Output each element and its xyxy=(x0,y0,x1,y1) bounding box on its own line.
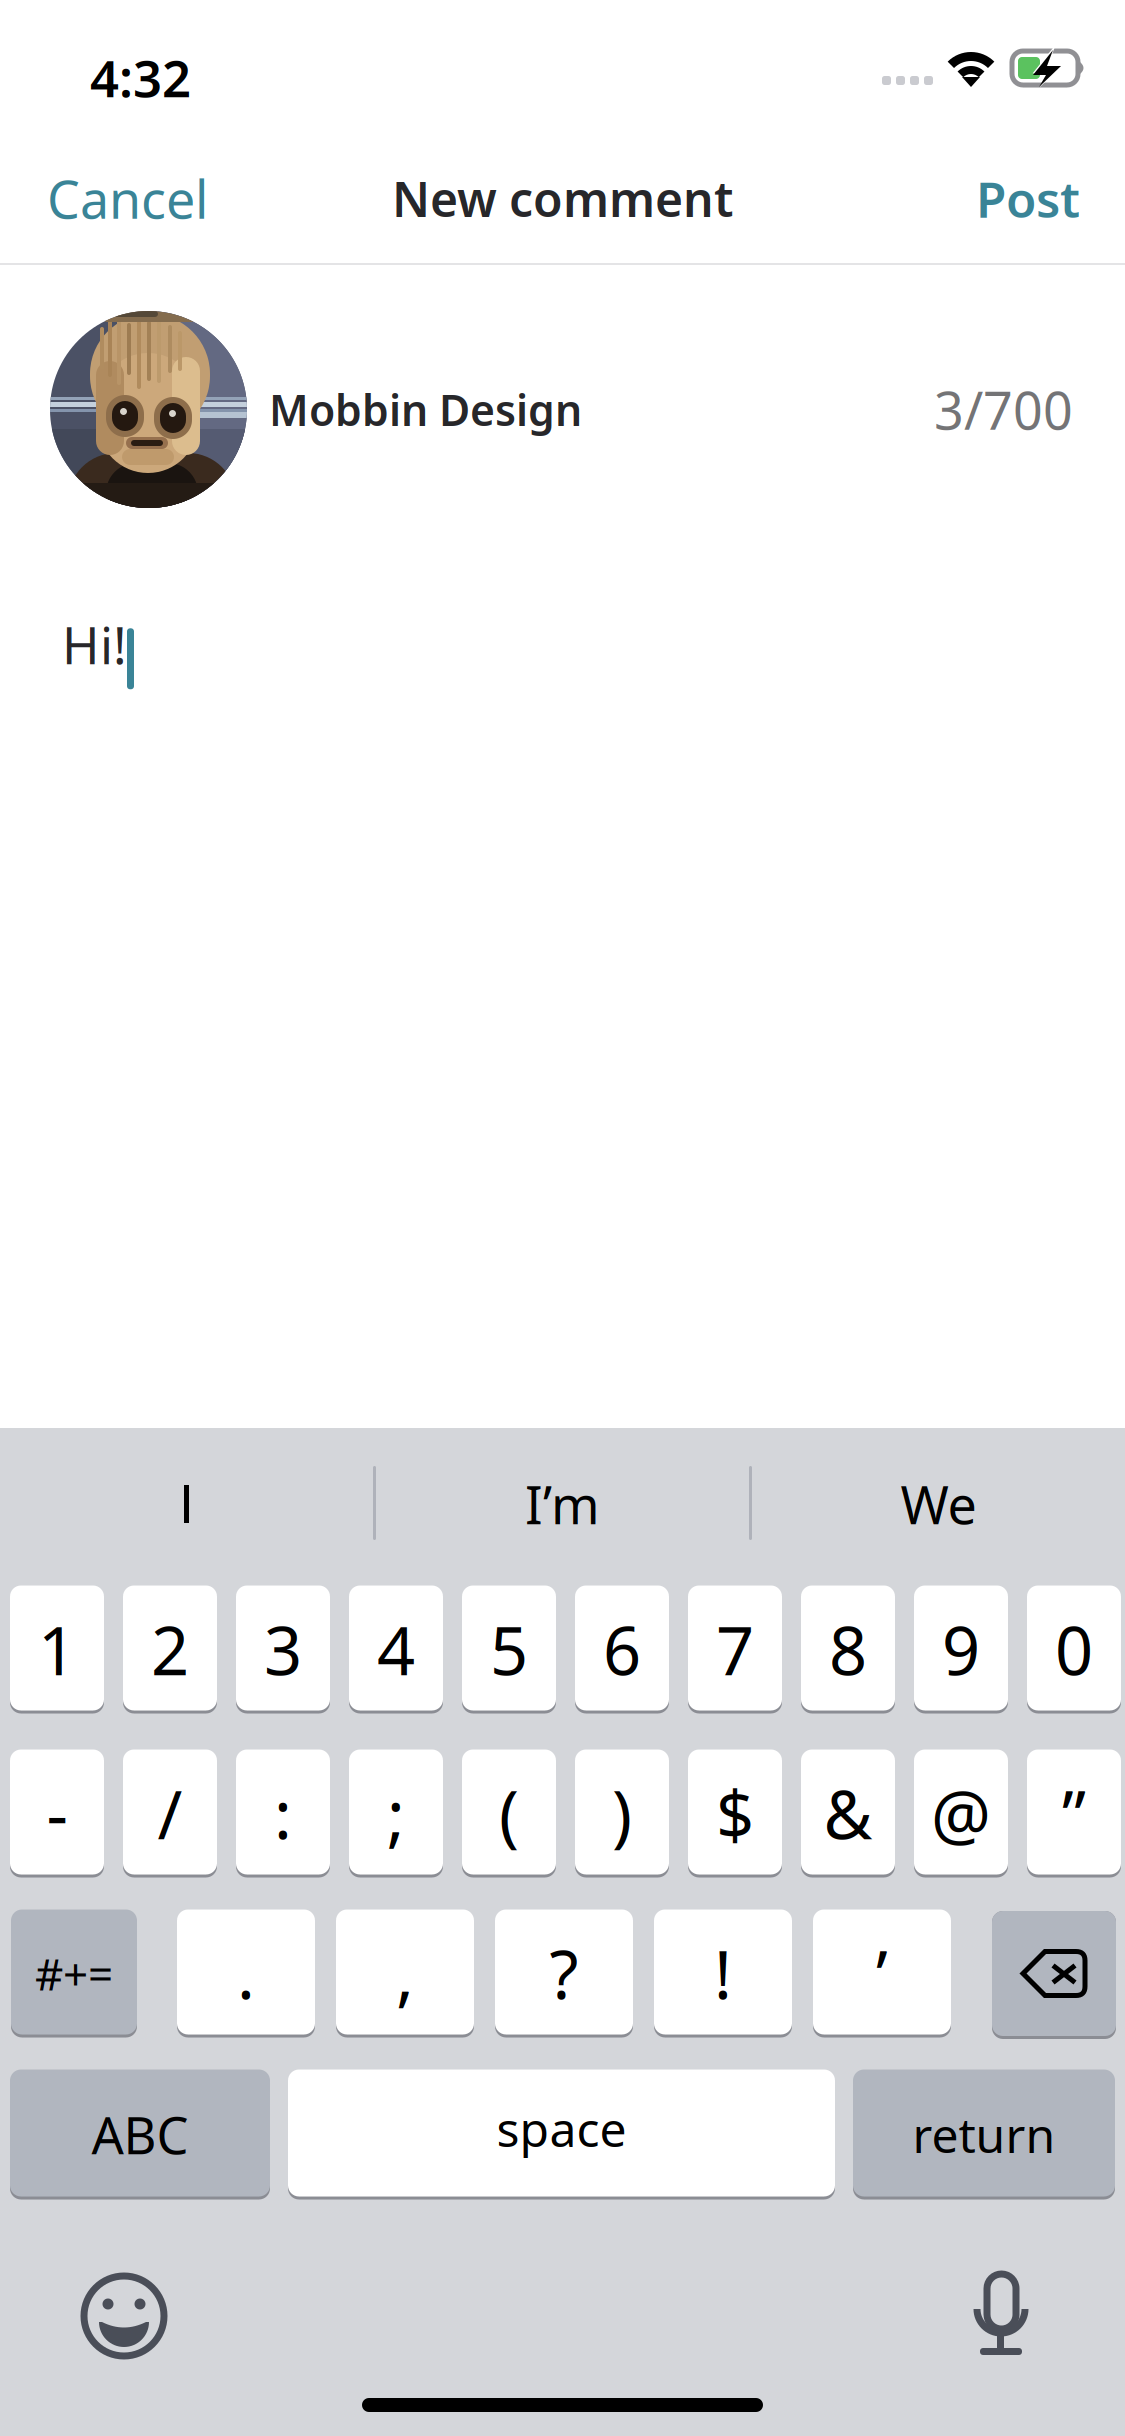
staticText: 0 xyxy=(1055,1605,1093,1694)
button[interactable]: ’ xyxy=(813,1911,951,2036)
button[interactable]: ? xyxy=(495,1911,633,2036)
button[interactable]: @ xyxy=(914,1751,1008,1876)
button[interactable]: #+= xyxy=(11,1911,137,2036)
button[interactable]: space xyxy=(288,2071,835,2198)
button[interactable]: ; xyxy=(349,1751,443,1876)
staticText: ; xyxy=(387,1769,405,1858)
staticText: / xyxy=(157,1769,182,1858)
button[interactable]: ABC xyxy=(10,2071,270,2198)
staticText: 1 xyxy=(38,1605,76,1694)
button[interactable]: ( xyxy=(462,1751,556,1876)
button[interactable]: / xyxy=(123,1751,217,1876)
button[interactable]: Cancel xyxy=(47,132,208,265)
button[interactable]: I xyxy=(0,1427,373,1587)
button[interactable]: Emoji keyboard xyxy=(82,2274,166,2358)
button[interactable]: return xyxy=(853,2071,1115,2198)
staticText: 4 xyxy=(377,1605,415,1694)
staticText: $ xyxy=(716,1769,754,1858)
staticText: ’ xyxy=(876,1929,888,2018)
staticText: We xyxy=(900,1469,976,1539)
staticText: 8 xyxy=(829,1605,867,1694)
staticText: Post xyxy=(976,166,1080,231)
button[interactable]: Post xyxy=(976,132,1080,265)
staticText: Hi! xyxy=(62,611,127,678)
staticText: ? xyxy=(549,1929,578,2018)
button[interactable]: $ xyxy=(688,1751,782,1876)
button[interactable]: I’m xyxy=(376,1427,749,1587)
staticText: 3 xyxy=(264,1605,302,1694)
staticText: 6 xyxy=(603,1605,641,1694)
staticText: New comment xyxy=(392,167,733,230)
button[interactable]: Delete xyxy=(992,1911,1116,2036)
button[interactable]: 9 xyxy=(914,1587,1008,1712)
button[interactable]: 3 xyxy=(236,1587,330,1712)
button[interactable]: 4 xyxy=(349,1587,443,1712)
button[interactable]: & xyxy=(801,1751,895,1876)
staticText: 4:32 xyxy=(90,44,191,111)
button[interactable]: ! xyxy=(654,1911,792,2036)
button[interactable]: 1 xyxy=(10,1587,104,1712)
button[interactable]: ) xyxy=(575,1751,669,1876)
staticText: #+= xyxy=(35,1944,113,2003)
staticText: , xyxy=(396,1929,414,2018)
staticText: 5 xyxy=(490,1605,528,1694)
button[interactable]: 5 xyxy=(462,1587,556,1712)
staticText: I’m xyxy=(525,1469,600,1539)
button[interactable]: 0 xyxy=(1027,1587,1121,1712)
button[interactable]: Dictation xyxy=(959,2274,1043,2358)
staticText: space xyxy=(496,2097,626,2160)
staticText: - xyxy=(46,1769,67,1858)
staticText: & xyxy=(823,1769,872,1858)
button[interactable]: 7 xyxy=(688,1587,782,1712)
button[interactable]: 8 xyxy=(801,1587,895,1712)
button[interactable]: , xyxy=(336,1911,474,2036)
staticText: 2 xyxy=(151,1605,189,1694)
button[interactable]: 6 xyxy=(575,1587,669,1712)
staticText: ) xyxy=(612,1769,632,1858)
button[interactable]: . xyxy=(177,1911,315,2036)
staticText: ! xyxy=(714,1929,732,2018)
staticText: Cancel xyxy=(47,164,208,233)
staticText: return xyxy=(912,2103,1055,2166)
staticText: ( xyxy=(499,1769,519,1858)
staticText: 7 xyxy=(716,1605,754,1694)
button[interactable]: - xyxy=(10,1751,104,1876)
staticText: . xyxy=(237,1929,255,2018)
staticText: @ xyxy=(931,1769,991,1858)
staticText: ABC xyxy=(91,2101,188,2168)
staticText: ” xyxy=(1062,1769,1086,1858)
staticText: : xyxy=(274,1769,292,1858)
staticText: 3/700 xyxy=(934,375,1073,444)
button[interactable]: : xyxy=(236,1751,330,1876)
staticText: Mobbin Design xyxy=(269,381,582,438)
button[interactable]: ” xyxy=(1027,1751,1121,1876)
staticText: 9 xyxy=(942,1605,980,1694)
button[interactable]: We xyxy=(752,1427,1125,1587)
button[interactable]: 2 xyxy=(123,1587,217,1712)
